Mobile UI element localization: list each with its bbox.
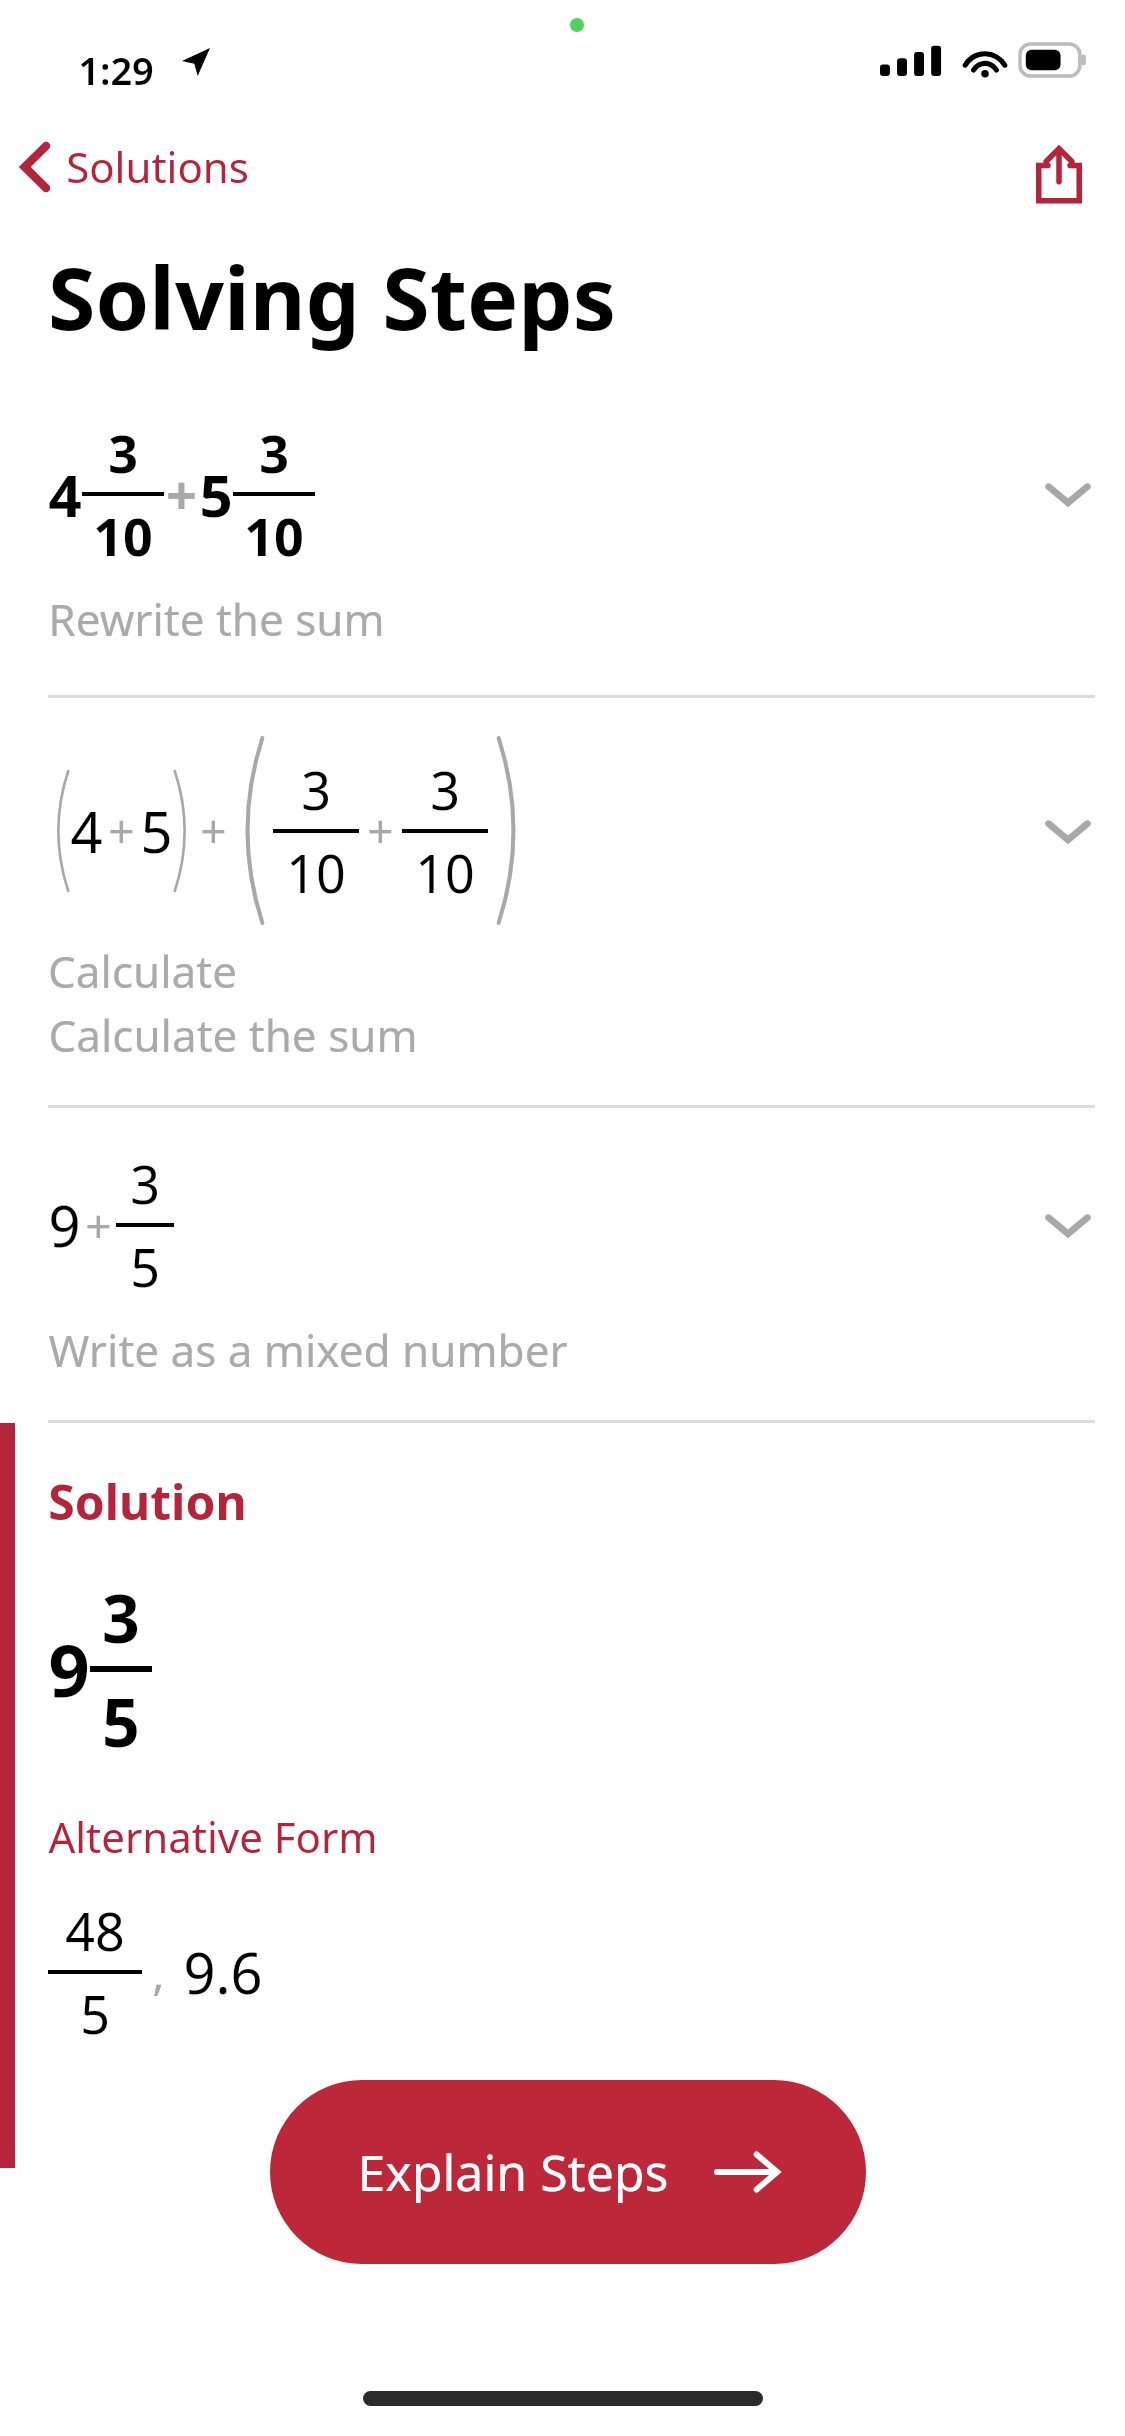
staticText: 3: [108, 417, 138, 488]
button[interactable]: Expand step: [1041, 804, 1095, 858]
staticText: 5: [140, 793, 173, 869]
button[interactable]: 4: [0, 417, 1125, 571]
button[interactable]: 4: [0, 738, 1125, 923]
staticText: Calculate the sum: [48, 1005, 418, 1065]
staticText: 5: [102, 1676, 140, 1766]
staticText: 48: [65, 1895, 125, 1966]
staticText: 1:29: [78, 44, 154, 96]
staticText: 10: [415, 837, 475, 908]
staticText: +: [108, 799, 135, 862]
staticText: 5: [199, 455, 233, 534]
button[interactable]: Share: [1017, 133, 1101, 217]
staticText: 3: [259, 417, 289, 488]
staticText: +: [85, 1194, 112, 1257]
staticText: Solving Steps: [48, 238, 616, 355]
staticText: Solution: [48, 1469, 247, 1534]
staticText: 10: [244, 500, 304, 571]
staticText: Write as a mixed number: [48, 1320, 568, 1380]
staticText: +: [367, 799, 394, 862]
button[interactable]: Expand step: [1041, 467, 1095, 521]
staticText: 4: [48, 455, 82, 534]
staticText: Rewrite the sum: [48, 589, 385, 649]
staticText: 9.6: [183, 1934, 263, 2010]
button[interactable]: Expand step: [1041, 1198, 1095, 1252]
staticText: 3: [130, 1148, 160, 1219]
button[interactable]: Explain Steps: [270, 2080, 866, 2264]
staticText: 5: [80, 1978, 110, 2049]
button[interactable]: Solutions: [22, 138, 249, 195]
button[interactable]: 9: [0, 1148, 1125, 1302]
staticText: 10: [93, 500, 153, 571]
staticText: 10: [286, 837, 346, 908]
staticText: +: [166, 457, 197, 531]
staticText: ,: [152, 1941, 165, 2004]
staticText: Explain Steps: [357, 2138, 669, 2206]
staticText: 9: [48, 1620, 90, 1718]
staticText: 3: [301, 754, 331, 825]
staticText: 3: [102, 1572, 140, 1662]
staticText: 5: [130, 1231, 160, 1302]
staticText: Alternative Form: [48, 1808, 378, 1865]
staticText: 3: [430, 754, 460, 825]
staticText: 9: [48, 1187, 81, 1263]
staticText: 4: [70, 793, 103, 869]
staticText: +: [200, 799, 227, 862]
staticText: Solutions: [66, 138, 249, 195]
staticText: Calculate: [48, 941, 237, 1001]
